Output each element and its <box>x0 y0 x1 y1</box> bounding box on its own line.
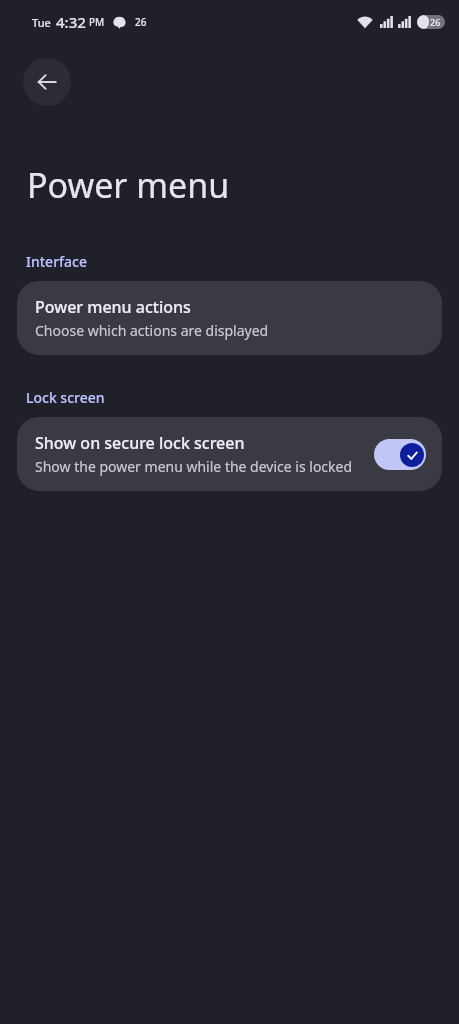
button[interactable]: Show on secure lock screen <box>17 417 442 491</box>
staticText: Interface <box>26 252 87 271</box>
staticText: 4:32 <box>56 12 86 32</box>
staticText: Lock screen <box>26 388 105 407</box>
staticText: 26 <box>430 16 441 28</box>
staticText: Power menu <box>27 162 230 208</box>
button[interactable]: Power menu actions <box>17 281 442 355</box>
button[interactable]: Show on secure lock screen toggle <box>374 439 426 470</box>
staticText: Tue <box>32 15 51 30</box>
staticText: Power menu actions <box>35 296 191 318</box>
staticText: Show the power menu while the device is … <box>35 457 353 476</box>
button[interactable]: Back <box>23 58 71 106</box>
staticText: Choose which actions are displayed <box>35 321 269 340</box>
staticText: Show on secure lock screen <box>35 432 245 454</box>
staticText: 26 <box>135 15 147 29</box>
staticText: PM <box>89 15 105 29</box>
